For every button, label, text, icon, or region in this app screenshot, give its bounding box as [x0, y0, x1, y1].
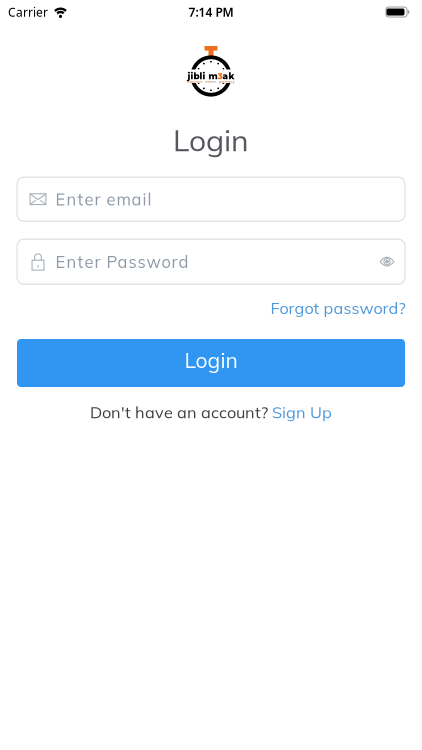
staticText: Sign Up — [272, 402, 332, 422]
staticText: Enter email — [55, 189, 151, 209]
staticText: ak — [222, 71, 234, 81]
button[interactable]: Login — [17, 339, 405, 387]
staticText: Don't have an account? — [90, 402, 272, 422]
staticText: Carrier — [8, 4, 48, 20]
staticText: Login — [173, 121, 249, 159]
button[interactable]: Enter email — [16, 177, 405, 222]
staticText: Enter Password — [55, 251, 188, 272]
staticText: 7:14 PM — [188, 4, 233, 20]
staticText: restaurant . market . pharmacy — [187, 80, 235, 83]
staticText: 3 — [217, 71, 222, 81]
button[interactable]: Sign Up — [272, 402, 332, 422]
staticText: Login — [184, 347, 237, 373]
staticText: Forgot password? — [270, 298, 405, 318]
button[interactable] — [379, 256, 394, 267]
button[interactable]: Enter Password — [16, 239, 405, 285]
staticText: jibli m — [187, 71, 217, 81]
button[interactable]: Forgot password? — [270, 298, 405, 318]
